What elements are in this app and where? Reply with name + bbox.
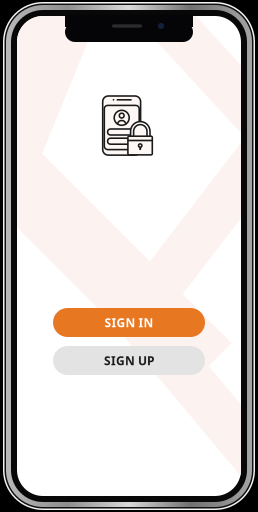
button[interactable]: SIGN IN [53,308,205,337]
staticText: SIGN IN [104,314,153,330]
staticText: SIGN UP [104,352,154,368]
button[interactable]: SIGN UP [53,346,205,375]
